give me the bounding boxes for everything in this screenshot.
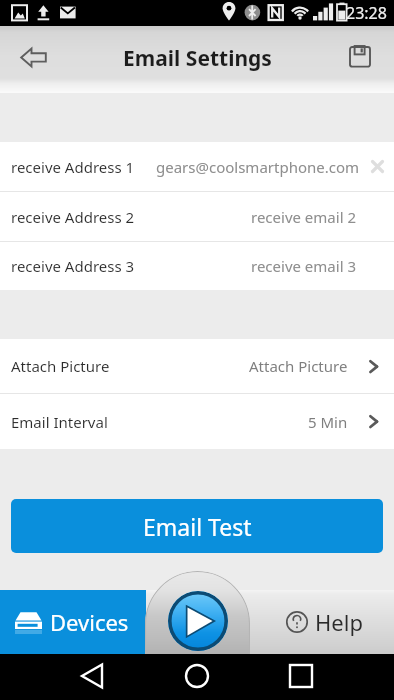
- staticText: gears@coolsmartphone.com: [156, 157, 360, 177]
- button[interactable]: Devices: [0, 590, 146, 654]
- button[interactable]: receive Address 3: [0, 242, 394, 290]
- staticText: 5 Min: [308, 412, 348, 432]
- button[interactable]: Help: [146, 590, 394, 654]
- staticText: receive Address 1: [11, 157, 135, 177]
- button[interactable]: Attach Picture: [0, 339, 394, 393]
- button[interactable]: Email Test: [11, 499, 383, 553]
- button[interactable]: receive Address 1: [0, 142, 394, 191]
- staticText: Devices: [50, 607, 129, 637]
- staticText: receive email 3: [251, 256, 356, 276]
- staticText: Email Test: [143, 511, 252, 542]
- staticText: Email Settings: [123, 44, 272, 73]
- staticText: receive email 2: [251, 207, 356, 227]
- staticText: Attach Picture: [11, 356, 110, 376]
- button[interactable]: Back: [8, 32, 58, 82]
- staticText: Help: [315, 607, 363, 637]
- button[interactable]: receive Address 2: [0, 192, 394, 241]
- staticText: receive Address 3: [11, 256, 135, 276]
- staticText: Attach Picture: [249, 356, 348, 376]
- button[interactable]: Play: [145, 571, 250, 654]
- button[interactable]: Save: [335, 32, 385, 82]
- button[interactable]: Email Interval: [0, 394, 394, 449]
- staticText: 23:28: [346, 2, 387, 24]
- staticText: receive Address 2: [11, 207, 135, 227]
- staticText: Email Interval: [11, 412, 108, 432]
